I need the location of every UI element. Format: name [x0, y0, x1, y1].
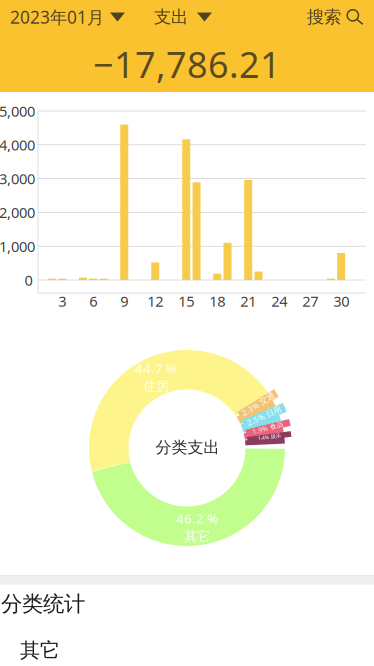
- staticText: 2.3%: [239, 399, 258, 409]
- button[interactable]: 支出: [154, 0, 212, 34]
- staticText: 3,000: [0, 169, 35, 188]
- staticText: 分类支出: [155, 438, 219, 457]
- staticText: 住房: [143, 378, 169, 395]
- staticText: 1,000: [0, 236, 35, 256]
- staticText: 分类统计: [1, 591, 85, 617]
- staticText: 娱乐: [271, 434, 281, 440]
- staticText: 18: [209, 291, 225, 311]
- staticText: 15: [178, 291, 194, 311]
- staticText: 2.5%: [246, 411, 265, 421]
- button[interactable]: 其它: [0, 630, 374, 666]
- staticText: 其它: [184, 528, 210, 545]
- staticText: 0: [24, 270, 32, 290]
- staticText: 30: [333, 291, 349, 311]
- staticText: 3: [58, 291, 66, 311]
- staticText: 日用: [267, 411, 283, 421]
- staticText: 支出: [154, 6, 188, 28]
- staticText: 交通: [260, 399, 276, 409]
- button[interactable]: 搜索: [307, 0, 364, 34]
- staticText: 搜索: [307, 6, 341, 28]
- staticText: 食品: [270, 424, 284, 432]
- staticText: −17,786.21: [93, 40, 281, 88]
- button[interactable]: 2023年01月: [10, 0, 125, 34]
- staticText: 4,000: [0, 135, 35, 155]
- staticText: 12: [147, 291, 163, 311]
- staticText: 1.4%: [258, 433, 269, 440]
- staticText: 5,000: [0, 101, 35, 121]
- staticText: 44.7 %: [135, 359, 177, 377]
- staticText: 1.9%: [252, 423, 268, 432]
- staticText: 6: [89, 291, 97, 311]
- staticText: 9: [120, 291, 128, 311]
- staticText: 其它: [20, 638, 60, 663]
- staticText: 21: [240, 291, 256, 311]
- staticText: 2023年01月: [10, 5, 104, 28]
- staticText: 27: [302, 291, 318, 311]
- staticText: 2,000: [0, 203, 35, 222]
- staticText: 24: [271, 291, 287, 311]
- staticText: 46.2 %: [176, 509, 218, 527]
